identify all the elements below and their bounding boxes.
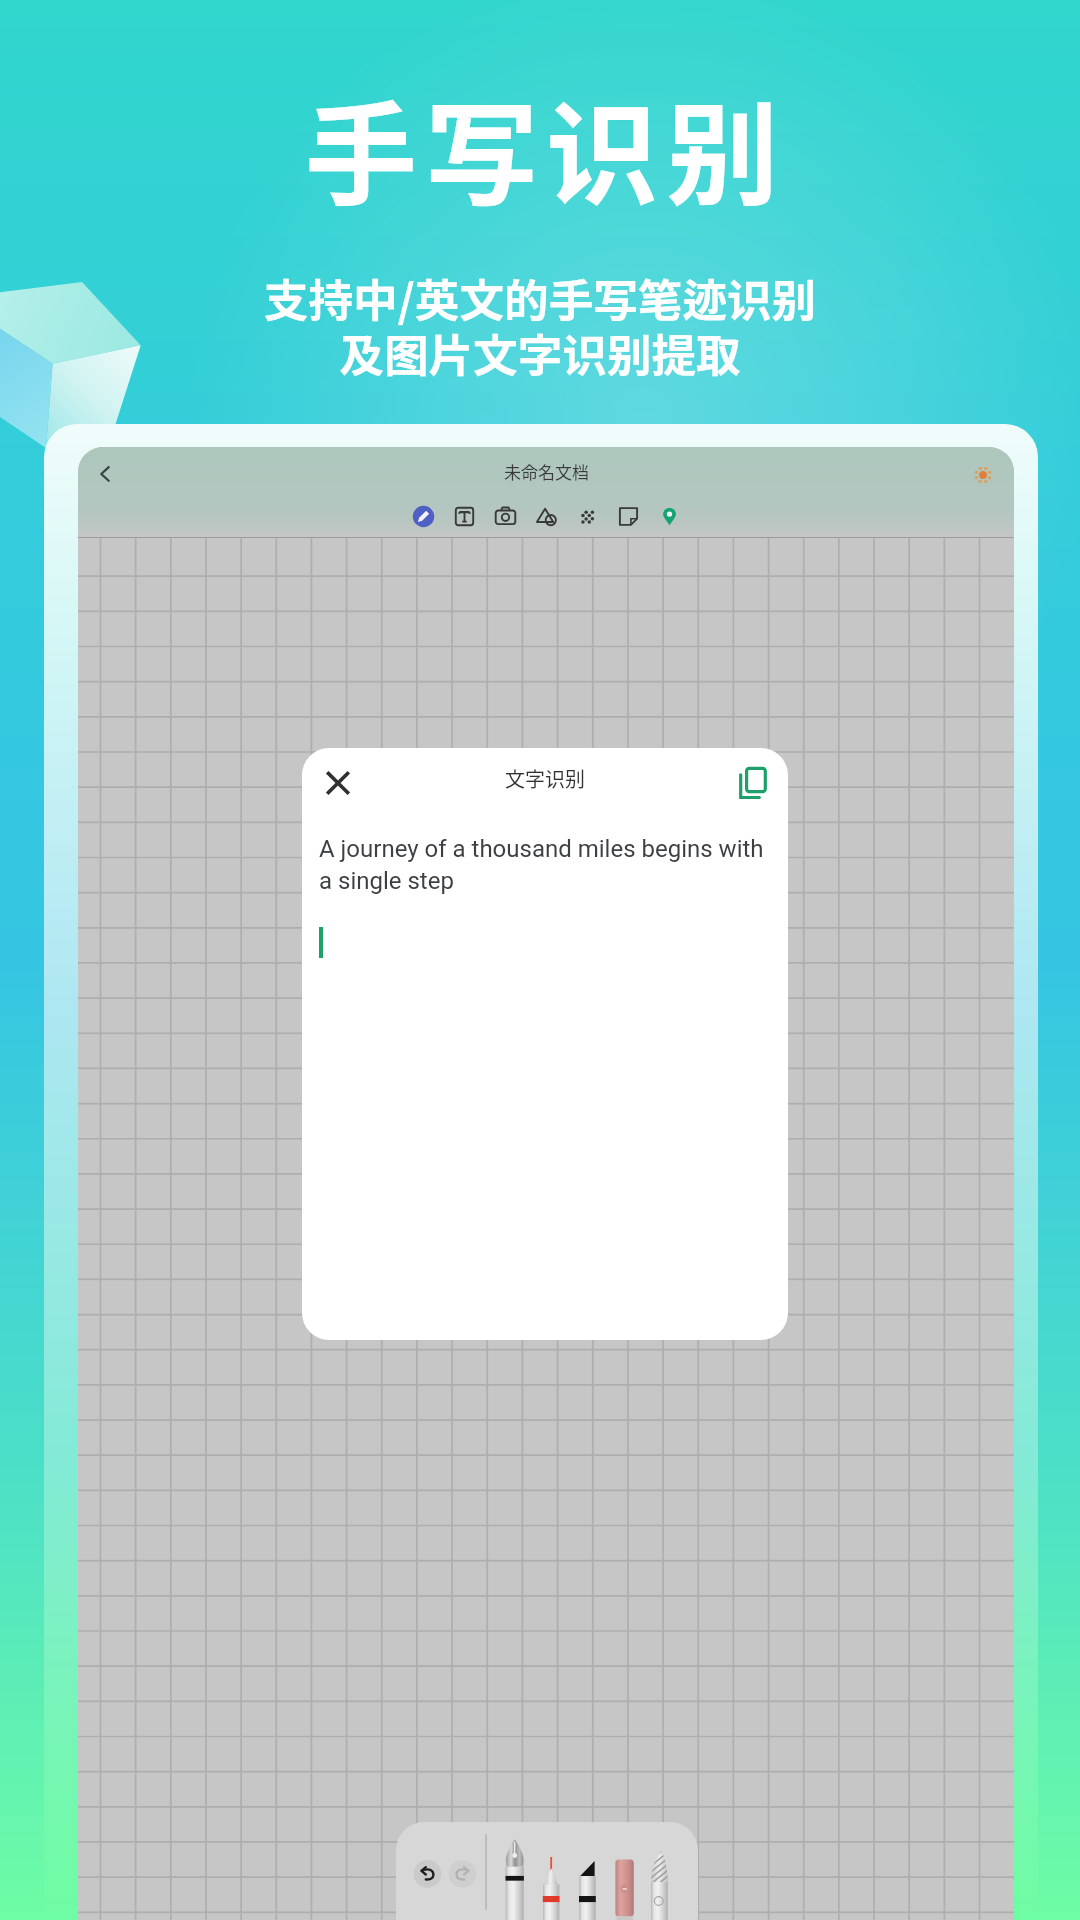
staticText: 未命名文档 [504, 459, 589, 484]
button[interactable]: Pen tray [396, 1822, 698, 1920]
button[interactable]: Pen [403, 494, 444, 535]
button[interactable]: Eraser [567, 494, 608, 535]
button[interactable]: Note [608, 494, 649, 535]
button[interactable]: A journey of a thousand miles begins wit… [302, 810, 788, 1340]
button[interactable]: Brightness [965, 457, 1001, 493]
button[interactable]: Close [318, 763, 358, 803]
button[interactable]: Pin [649, 494, 690, 535]
button[interactable]: Camera [485, 494, 526, 535]
staticText: A journey of a thousand miles begins wit… [319, 835, 769, 894]
button[interactable]: Back [85, 454, 125, 494]
staticText: 文字识别 [505, 764, 585, 793]
button[interactable]: Copy [728, 761, 772, 805]
staticText: 手写识别 [6, 66, 1080, 228]
staticText: 支持中/英文的手写笔迹识别 及图片文字识别提取 [0, 265, 1080, 385]
button[interactable]: Text [444, 494, 485, 535]
button[interactable]: Shapes [526, 494, 567, 535]
